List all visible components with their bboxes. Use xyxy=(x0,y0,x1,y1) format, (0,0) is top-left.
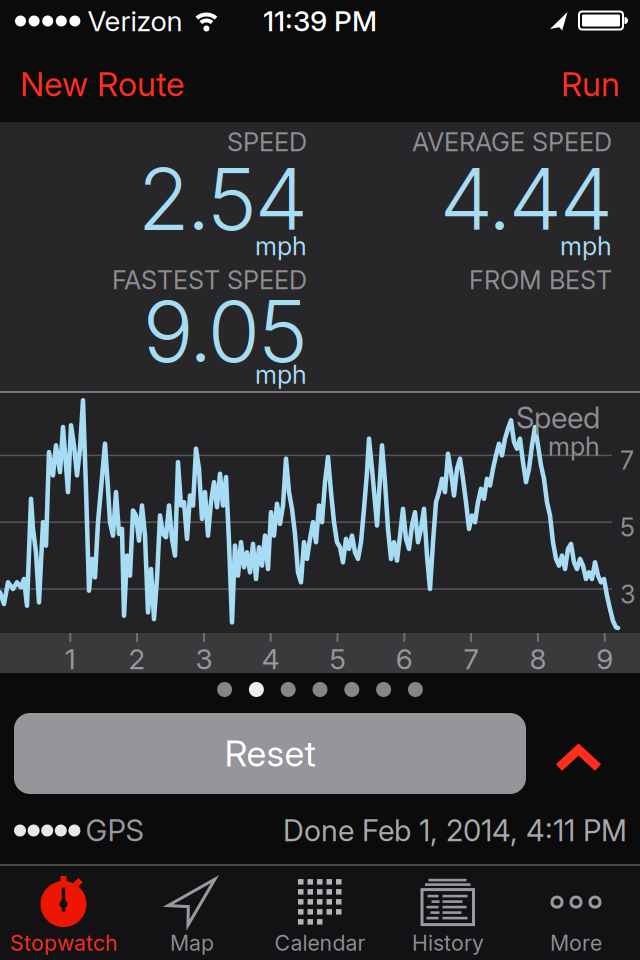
staticText: 5 xyxy=(329,642,345,676)
staticText: More xyxy=(550,930,602,956)
staticText: Calendar xyxy=(274,930,365,956)
button[interactable]: Expand xyxy=(557,743,600,764)
staticText: mph xyxy=(560,231,612,261)
staticText: 9 xyxy=(596,642,613,676)
button[interactable]: Stopwatch xyxy=(0,866,128,960)
staticText: 2 xyxy=(129,642,146,676)
button[interactable]: Reset xyxy=(14,713,526,794)
staticText: 1 xyxy=(65,642,76,676)
staticText: Speed xyxy=(516,400,600,435)
staticText: mph xyxy=(255,359,307,390)
staticText: 3 xyxy=(620,579,636,610)
staticText: mph xyxy=(548,431,600,462)
staticText: New Route xyxy=(20,64,184,104)
staticText: 7 xyxy=(620,445,634,476)
button[interactable]: More xyxy=(512,866,640,960)
staticText: Done Feb 1, 2014, 4:11 PM xyxy=(283,813,627,848)
staticText: FASTEST SPEED xyxy=(112,265,307,295)
staticText: Verizon xyxy=(87,4,182,38)
staticText: mph xyxy=(255,231,307,261)
button[interactable]: Map xyxy=(128,866,256,960)
staticText: SPEED xyxy=(227,127,307,157)
button[interactable]: Calendar xyxy=(256,866,384,960)
staticText: 6 xyxy=(396,642,413,676)
button[interactable]: New Route xyxy=(20,64,184,104)
staticText: 4 xyxy=(262,642,280,676)
staticText: Reset xyxy=(224,732,315,775)
staticText: Stopwatch xyxy=(10,930,118,956)
staticText: 8 xyxy=(529,642,546,676)
staticText: GPS xyxy=(85,813,143,848)
button[interactable]: History xyxy=(384,866,512,960)
staticText: 3 xyxy=(195,642,212,676)
staticText: Map xyxy=(170,930,214,956)
staticText: FROM BEST xyxy=(469,265,612,295)
staticText: Run xyxy=(561,64,620,104)
staticText: AVERAGE SPEED xyxy=(412,127,612,157)
staticText: 2.54 xyxy=(139,147,307,251)
staticText: 4.44 xyxy=(441,147,612,251)
staticText: 7 xyxy=(464,642,479,676)
staticText: 9.05 xyxy=(144,279,307,383)
staticText: History xyxy=(412,930,484,956)
button[interactable]: Run xyxy=(561,64,620,104)
staticText: 5 xyxy=(620,512,635,543)
staticText: 11:39 PM xyxy=(263,4,377,38)
